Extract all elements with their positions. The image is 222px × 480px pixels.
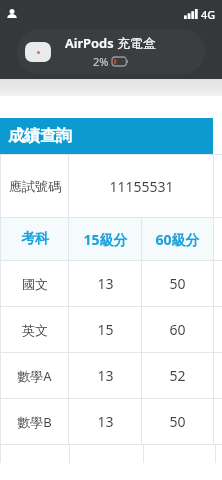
- staticText: 英文: [22, 322, 48, 338]
- staticText: 50: [169, 274, 186, 293]
- staticText: 13: [97, 274, 114, 293]
- staticText: 國文: [22, 276, 48, 292]
- staticText: AirPods 充電盒: [65, 34, 157, 52]
- staticText: 11155531: [109, 177, 174, 196]
- staticText: 2%: [93, 54, 109, 69]
- staticText: 考科: [21, 230, 49, 248]
- staticText: 數學B: [17, 413, 52, 431]
- button[interactable]: 數學B: [0, 399, 222, 444]
- staticText: 成績查詢: [8, 126, 72, 146]
- staticText: 60: [169, 320, 186, 339]
- staticText: 15: [97, 320, 114, 339]
- staticText: 15級分: [83, 230, 128, 249]
- staticText: 50: [169, 412, 186, 431]
- button[interactable]: 國文: [0, 261, 222, 306]
- other: Account: [6, 8, 18, 20]
- button[interactable]: 數學A: [0, 353, 222, 398]
- staticText: 應試號碼: [9, 178, 61, 194]
- staticText: 數學A: [17, 367, 52, 385]
- button[interactable]: 成績查詢: [0, 118, 213, 154]
- staticText: 4G: [201, 7, 216, 22]
- staticText: 13: [97, 366, 114, 385]
- staticText: 52: [169, 366, 186, 385]
- staticText: 13: [97, 412, 114, 431]
- button[interactable]: 英文: [0, 307, 222, 352]
- button[interactable]: AirPods 充電盒: [17, 29, 205, 74]
- staticText: 60級分: [155, 230, 200, 249]
